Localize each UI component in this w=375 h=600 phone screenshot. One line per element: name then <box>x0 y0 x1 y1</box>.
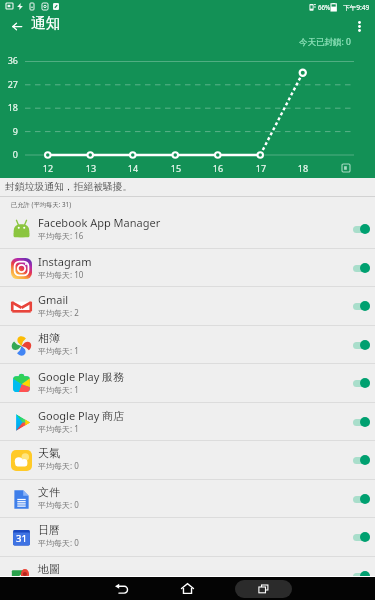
staticText: 15 <box>166 162 186 174</box>
button[interactable]: 地圖 <box>0 556 375 595</box>
staticText: 66% <box>318 3 331 11</box>
staticText: 平均每天: 16 <box>38 230 84 241</box>
staticText: 0 <box>0 148 18 160</box>
staticText: 平均每天: 2 <box>38 307 79 318</box>
staticText: 27 <box>0 78 18 90</box>
button[interactable]: Facebook App Manager <box>0 209 375 248</box>
button[interactable]: Instagram <box>0 248 375 287</box>
staticText: 相簿 <box>38 331 60 345</box>
staticText: 平均每天: 1 <box>38 423 79 434</box>
staticText: 下午9:49 <box>343 3 370 12</box>
staticText: 今天已封鎖: 0 <box>299 36 351 48</box>
button[interactable]: 31 <box>0 517 375 556</box>
button[interactable]: Back <box>2 11 32 41</box>
staticText: 18 <box>0 101 18 113</box>
staticText: 平均每天: 10 <box>38 269 84 280</box>
button[interactable]: Toggle notifications <box>350 260 370 276</box>
button[interactable]: 天氣 <box>0 440 375 479</box>
staticText: 31 <box>16 532 27 545</box>
button[interactable]: Toggle notifications <box>350 568 370 584</box>
button[interactable]: Recents <box>235 580 292 598</box>
button[interactable]: Toggle notifications <box>350 414 370 430</box>
staticText: 已允許 (平均每天: 31) <box>11 200 72 209</box>
staticText: 平均每天: 1 <box>38 345 79 356</box>
staticText: 18 <box>293 162 313 174</box>
button[interactable]: Toggle notifications <box>350 221 370 237</box>
staticText: 平均每天: 0 <box>38 499 79 510</box>
staticText: 平均每天: 0 <box>38 537 79 548</box>
staticText: 通知 <box>31 14 61 33</box>
staticText: 封鎖垃圾通知，拒絕被騷擾。 <box>5 181 133 193</box>
button[interactable]: Google Play 商店 <box>0 402 375 441</box>
staticText: 文件 <box>38 485 60 499</box>
staticText: 平均每天: 0 <box>38 460 79 471</box>
button[interactable]: Back <box>98 577 146 600</box>
staticText: 9 <box>0 125 18 137</box>
staticText: 14 <box>123 162 143 174</box>
button[interactable]: Toggle notifications <box>350 452 370 468</box>
staticText: 日曆 <box>38 523 60 537</box>
button[interactable]: Toggle notifications <box>350 529 370 545</box>
staticText: 16 <box>208 162 228 174</box>
button[interactable]: Toggle notifications <box>350 298 370 314</box>
staticText: 平均每天: 0 <box>38 576 79 587</box>
button[interactable]: 文件 <box>0 479 375 518</box>
staticText: 36 <box>0 54 18 66</box>
staticText: 13 <box>81 162 101 174</box>
staticText: 地圖 <box>38 562 60 576</box>
button[interactable]: Toggle notifications <box>350 491 370 507</box>
button[interactable]: Google Play 服務 <box>0 363 375 402</box>
staticText: 17 <box>251 162 271 174</box>
button[interactable]: Home <box>163 577 211 600</box>
button[interactable]: Toggle notifications <box>350 375 370 391</box>
staticText: 12 <box>38 162 58 174</box>
button[interactable]: More options <box>344 11 374 41</box>
button[interactable]: Calendar <box>337 159 354 176</box>
button[interactable]: Gmail <box>0 286 375 325</box>
staticText: Google Play 商店 <box>38 408 125 423</box>
staticText: 天氣 <box>38 446 60 460</box>
staticText: Facebook App Manager <box>38 215 161 230</box>
staticText: Instagram <box>38 254 92 269</box>
button[interactable]: Toggle notifications <box>350 337 370 353</box>
button[interactable]: 相簿 <box>0 325 375 364</box>
staticText: 平均每天: 1 <box>38 384 79 395</box>
staticText: Google Play 服務 <box>38 369 125 384</box>
staticText: Gmail <box>38 292 69 307</box>
